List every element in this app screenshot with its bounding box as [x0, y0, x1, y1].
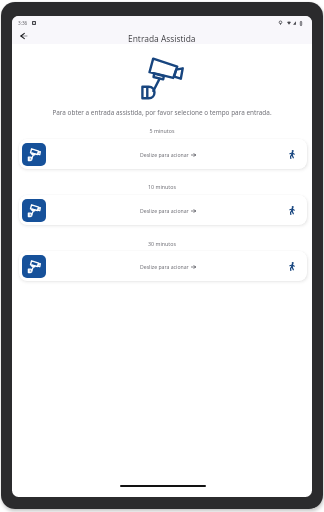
- staticText: Deslize para acionar: [140, 207, 189, 214]
- staticText: Deslize para acionar: [140, 151, 189, 158]
- button[interactable]: Deslize para acionar: [19, 139, 307, 169]
- staticText: 10 minutos: [12, 183, 312, 190]
- staticText: Para obter a entrada assistida, por favo…: [18, 108, 306, 117]
- staticText: Entrada Assistida: [128, 33, 196, 44]
- button[interactable]: Deslize para acionar: [19, 195, 307, 225]
- staticText: 30 minutos: [12, 240, 312, 247]
- button[interactable]: Back: [13, 26, 33, 46]
- button[interactable]: Deslize para acionar: [19, 251, 307, 281]
- staticText: 5 minutos: [12, 127, 312, 134]
- staticText: Deslize para acionar: [140, 263, 189, 270]
- staticText: 3:36: [18, 20, 28, 26]
